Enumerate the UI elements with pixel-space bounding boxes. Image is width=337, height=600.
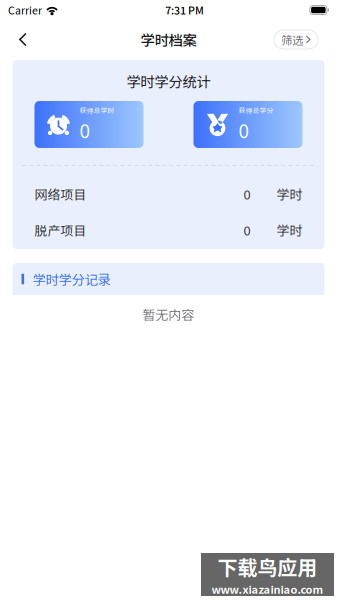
staticText: 0	[79, 116, 90, 144]
staticText: 学时	[276, 185, 302, 203]
staticText: Carrier	[8, 2, 42, 18]
staticText: 网络项目	[34, 185, 86, 203]
staticText: 学时学分统计	[126, 71, 210, 91]
staticText: 0	[243, 221, 250, 239]
staticText: 暂无内容	[142, 305, 194, 323]
staticText: 获得总学分	[238, 105, 273, 115]
button[interactable]: 筛选	[274, 30, 318, 49]
staticText: 下载鸟应用	[217, 552, 317, 581]
staticText: www.xiazainiao.com	[211, 581, 323, 597]
staticText: 学时学分记录	[33, 269, 111, 288]
staticText: 0	[243, 185, 250, 203]
staticText: 学时档案	[140, 29, 196, 50]
staticText: 脱产项目	[34, 221, 86, 239]
staticText: 0	[238, 116, 249, 144]
staticText: 获得总学时	[79, 105, 114, 115]
staticText: 学时	[276, 221, 302, 239]
button[interactable]: Back	[7, 22, 39, 56]
staticText: 7:31 PM	[165, 2, 204, 18]
staticText: 筛选	[281, 31, 303, 48]
